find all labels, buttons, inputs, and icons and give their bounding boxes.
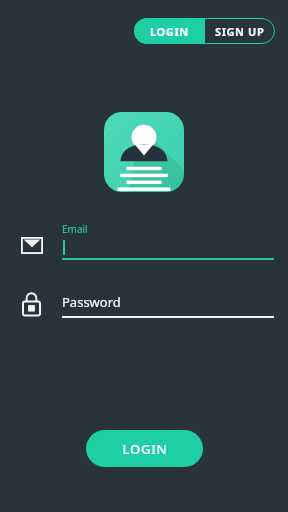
other: Email bbox=[21, 237, 43, 254]
button[interactable]: Password bbox=[18, 288, 274, 322]
staticText: Email bbox=[62, 222, 88, 236]
staticText: LOGIN bbox=[122, 440, 168, 458]
staticText: LOGIN bbox=[150, 24, 189, 39]
staticText: Password bbox=[62, 293, 121, 311]
button[interactable]: SIGN UP bbox=[205, 18, 275, 44]
other: Password bbox=[22, 292, 41, 316]
button[interactable]: Email bbox=[18, 218, 274, 263]
button[interactable]: LOGIN bbox=[86, 430, 203, 467]
staticText: SIGN UP bbox=[215, 24, 265, 39]
button[interactable]: LOGIN bbox=[134, 18, 205, 44]
